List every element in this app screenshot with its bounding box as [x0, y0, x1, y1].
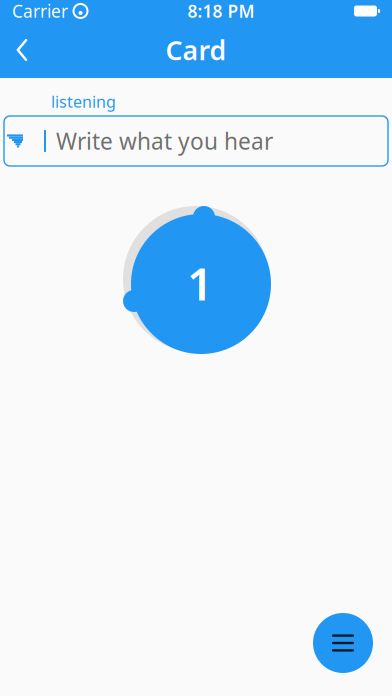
staticText: listening: [51, 91, 116, 112]
staticText: 8:18 PM: [187, 0, 254, 22]
staticText: Card: [165, 32, 226, 68]
button[interactable]: Menu: [313, 613, 373, 673]
staticText: 1: [187, 253, 213, 313]
button[interactable]: Back: [0, 28, 44, 72]
staticText: Carrier: [12, 0, 68, 22]
staticText: Write what you hear: [56, 126, 273, 156]
